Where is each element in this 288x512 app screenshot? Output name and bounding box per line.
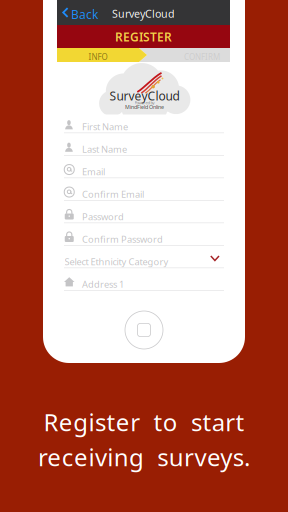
button[interactable]: Confirm Password [64,227,224,249]
staticText: Confirm Email [82,188,144,200]
staticText: receiving surveys. [38,441,250,473]
staticText: Last Name [82,143,127,155]
staticText: INFO [88,52,107,62]
staticText: SurveyCloud [112,6,175,21]
staticText: SurveyCloud [109,88,179,104]
staticText: Email [82,165,105,178]
staticText: REGISTER [115,29,172,45]
staticText: Confirm Password [82,233,163,245]
button[interactable]: Address 1 [64,272,224,294]
button[interactable]: Address 2 [64,294,224,317]
button[interactable]: Select Ethnicity Category [64,249,224,272]
staticText: MindField Online [125,103,164,111]
staticText: Password [82,210,124,223]
button[interactable]: First Name [64,114,224,137]
staticText: First Name [82,120,128,133]
staticText: CONFIRM [184,52,220,62]
button[interactable]: Confirm Email [64,182,224,204]
button[interactable]: Email [64,159,224,182]
staticText: Back [71,6,98,22]
staticText: Powered by [134,100,154,105]
staticText: Register to start [43,406,245,438]
button[interactable]: CONFIRM [139,48,269,62]
staticText: Select Ethnicity Category [64,255,168,268]
staticText: Address 1 [82,278,124,290]
button[interactable]: Password [64,204,224,227]
button[interactable]: INFO [57,48,147,62]
button[interactable]: Last Name [64,137,224,159]
button[interactable]: Back [57,0,95,25]
